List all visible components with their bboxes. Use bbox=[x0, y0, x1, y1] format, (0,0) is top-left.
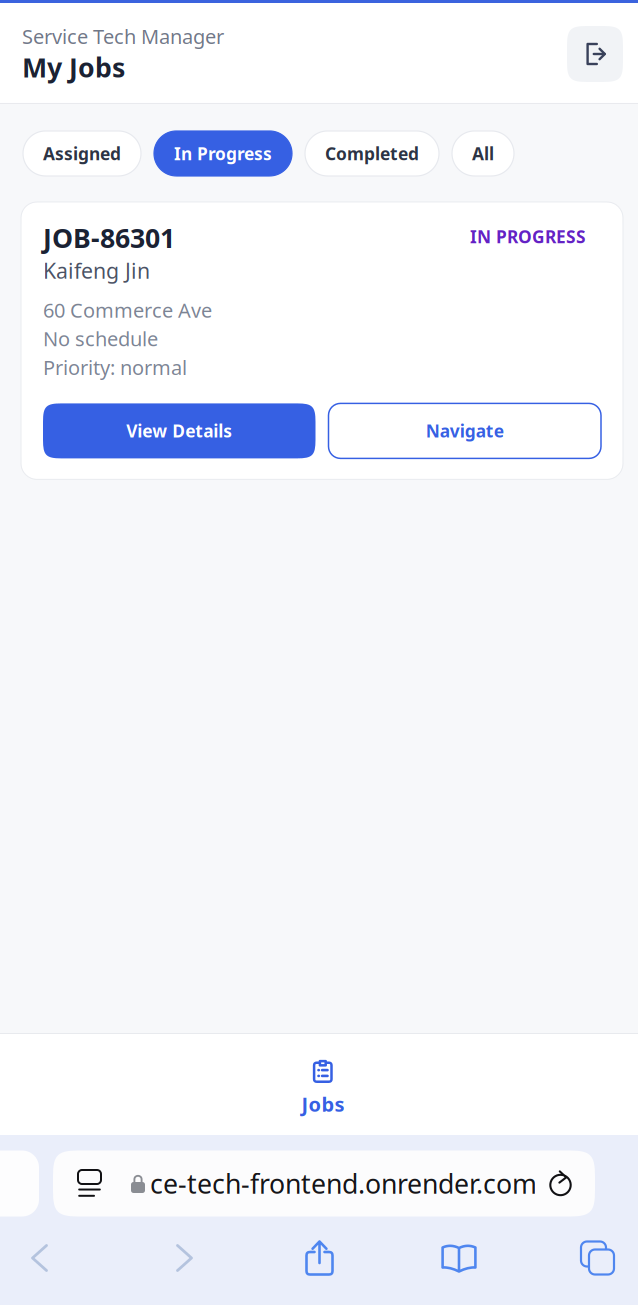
staticText: Jobs bbox=[301, 1091, 344, 1117]
staticText: Completed bbox=[325, 142, 419, 165]
staticText: Priority: normal bbox=[43, 354, 187, 380]
button[interactable]: Forward bbox=[169, 1235, 200, 1281]
staticText: Assigned bbox=[43, 142, 121, 165]
staticText: No schedule bbox=[43, 325, 158, 352]
staticText: Navigate bbox=[426, 419, 504, 442]
button[interactable]: Back bbox=[24, 1235, 55, 1281]
button[interactable]: Jobs bbox=[0, 1034, 638, 1135]
staticText: In Progress bbox=[174, 142, 272, 165]
staticText: JOB-86301 bbox=[43, 220, 175, 255]
staticText: Service Tech Manager bbox=[22, 23, 224, 50]
button[interactable]: Tabs bbox=[581, 1235, 614, 1281]
button[interactable]: Bookmarks bbox=[441, 1235, 477, 1281]
button[interactable]: All bbox=[452, 131, 514, 176]
staticText: All bbox=[472, 142, 494, 165]
staticText: ce-tech-frontend.onrender.com bbox=[150, 1166, 537, 1201]
button[interactable]: Sign out bbox=[567, 26, 623, 82]
staticText: IN PROGRESS bbox=[470, 225, 586, 248]
staticText: View Details bbox=[126, 419, 232, 442]
staticText: Kaifeng Jin bbox=[43, 256, 150, 285]
button[interactable]: Navigate bbox=[328, 403, 601, 458]
staticText: 60 Commerce Ave bbox=[43, 297, 212, 323]
button[interactable]: In Progress bbox=[154, 131, 292, 176]
staticText: My Jobs bbox=[22, 50, 125, 85]
button[interactable]: Completed bbox=[305, 131, 439, 176]
button[interactable]: Assigned bbox=[23, 131, 141, 176]
button[interactable]: Share bbox=[305, 1235, 334, 1281]
button[interactable]: View Details bbox=[43, 403, 315, 458]
